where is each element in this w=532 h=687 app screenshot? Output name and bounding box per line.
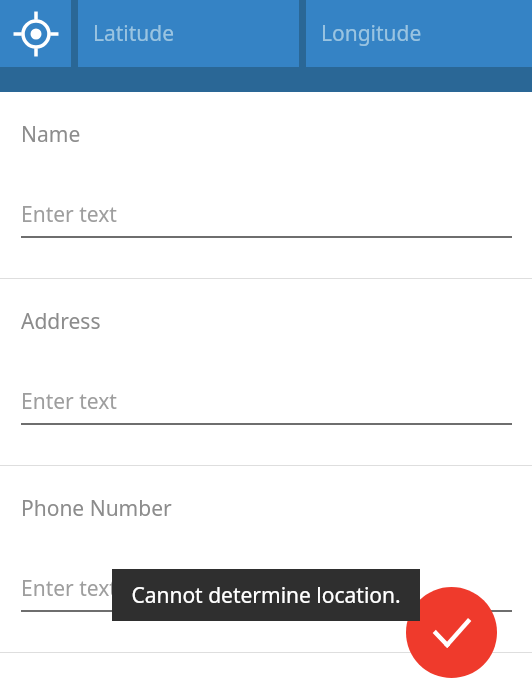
staticText: Cannot determine location. bbox=[131, 581, 401, 610]
button[interactable]: Get current location bbox=[0, 0, 71, 67]
staticText: Address bbox=[21, 307, 101, 336]
staticText: Enter text bbox=[21, 574, 117, 603]
staticText: Name bbox=[21, 120, 81, 149]
button[interactable]: Longitude bbox=[306, 0, 532, 67]
staticText: Latitude bbox=[93, 19, 175, 48]
button[interactable]: Enter text bbox=[21, 574, 512, 612]
button[interactable]: Save bbox=[406, 587, 497, 678]
button[interactable]: Cannot determine location. bbox=[112, 569, 420, 621]
staticText: Enter text bbox=[21, 387, 117, 416]
button[interactable]: Enter text bbox=[21, 200, 512, 238]
staticText: Enter text bbox=[21, 200, 117, 229]
staticText: Phone Number bbox=[21, 494, 172, 523]
button[interactable]: Enter text bbox=[21, 387, 512, 425]
staticText: Longitude bbox=[321, 19, 422, 48]
button[interactable]: Latitude bbox=[78, 0, 299, 67]
